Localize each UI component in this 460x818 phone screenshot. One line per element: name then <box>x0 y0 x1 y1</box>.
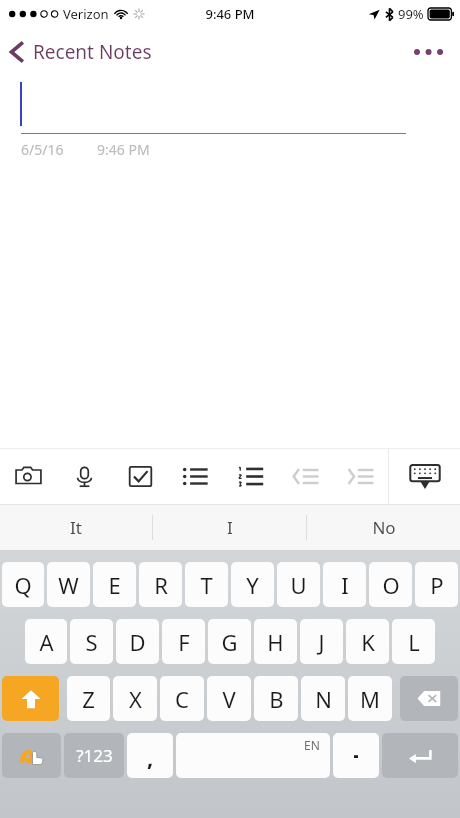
button[interactable]: N <box>301 676 345 721</box>
button[interactable]: S <box>70 619 113 664</box>
staticText: No <box>372 516 396 539</box>
staticText: O <box>382 570 400 600</box>
button[interactable]: W <box>47 562 90 607</box>
button[interactable]: Bulleted list <box>168 449 223 504</box>
staticText: A <box>39 627 54 657</box>
staticText: C <box>175 684 189 714</box>
staticText: F <box>178 627 190 657</box>
button[interactable]: I <box>323 562 366 607</box>
button[interactable]: Y <box>231 562 274 607</box>
button[interactable]: ?123 <box>64 733 124 778</box>
button[interactable]: O <box>369 562 412 607</box>
staticText: EN <box>304 737 320 753</box>
button[interactable]: It <box>0 505 152 550</box>
button[interactable]: G <box>208 619 251 664</box>
button[interactable]: Space <box>176 733 330 778</box>
staticText: It <box>70 516 82 539</box>
staticText: L <box>408 627 420 657</box>
staticText: Recent Notes <box>33 39 152 65</box>
staticText: D <box>129 627 146 657</box>
button[interactable]: Input method <box>2 733 61 778</box>
staticText: , <box>147 742 154 772</box>
staticText: I <box>227 516 233 539</box>
button[interactable]: P <box>415 562 458 607</box>
button[interactable]: Z <box>67 676 110 721</box>
button[interactable]: D <box>116 619 159 664</box>
button[interactable]: A <box>25 619 67 664</box>
staticText: Y <box>246 570 259 600</box>
staticText: Q <box>14 570 32 600</box>
staticText: T <box>200 570 213 600</box>
staticText: P <box>430 570 444 600</box>
staticText: ?123 <box>76 744 113 767</box>
button[interactable]: T <box>185 562 228 607</box>
staticText: E <box>108 570 121 600</box>
staticText: 99% <box>398 5 424 23</box>
staticText: 6/5/16 <box>21 140 64 159</box>
button[interactable]: U <box>277 562 320 607</box>
button[interactable]: Checklist <box>112 449 168 504</box>
staticText: U <box>290 570 307 600</box>
staticText: K <box>361 627 375 657</box>
button[interactable]: F <box>162 619 205 664</box>
button[interactable]: Microphone <box>56 449 112 504</box>
button[interactable]: L <box>392 619 435 664</box>
button[interactable]: Decrease indent <box>278 449 333 504</box>
button[interactable]: Numbered list <box>223 449 278 504</box>
button[interactable]: Hide keyboard <box>389 449 460 504</box>
button[interactable]: H <box>254 619 297 664</box>
staticText: I <box>341 570 349 600</box>
button[interactable]: More options <box>406 32 452 72</box>
button[interactable]: E <box>93 562 136 607</box>
button[interactable]: Q <box>2 562 44 607</box>
button[interactable]: M <box>348 676 392 721</box>
button[interactable]: Shift <box>2 676 59 721</box>
staticText: R <box>154 570 168 600</box>
button[interactable]: Recent Notes <box>0 33 164 71</box>
button[interactable] <box>333 733 379 778</box>
staticText: Verizon <box>63 5 109 23</box>
button[interactable]: K <box>346 619 389 664</box>
button[interactable]: , <box>127 733 173 778</box>
button[interactable]: C <box>160 676 204 721</box>
button[interactable]: Camera <box>0 449 56 504</box>
staticText: M <box>360 684 380 714</box>
button[interactable]: I <box>153 505 306 550</box>
staticText: H <box>267 627 284 657</box>
button[interactable]: B <box>254 676 298 721</box>
staticText: 9:46 PM <box>205 5 255 23</box>
staticText: Z <box>82 684 95 714</box>
button[interactable]: No <box>307 505 460 550</box>
staticText: G <box>221 627 238 657</box>
button[interactable]: V <box>207 676 251 721</box>
staticText: J <box>318 627 325 657</box>
button[interactable]: Enter <box>382 733 458 778</box>
staticText: S <box>85 627 98 657</box>
staticText: 9:46 PM <box>97 140 150 159</box>
button[interactable]: X <box>113 676 157 721</box>
button[interactable]: Backspace <box>400 676 458 721</box>
staticText: N <box>315 684 332 714</box>
button[interactable]: J <box>300 619 343 664</box>
staticText: X <box>129 684 142 714</box>
button[interactable]: Increase indent <box>333 449 388 504</box>
staticText: V <box>222 684 236 714</box>
button[interactable]: R <box>139 562 182 607</box>
staticText: W <box>58 570 79 600</box>
staticText: B <box>269 684 284 714</box>
